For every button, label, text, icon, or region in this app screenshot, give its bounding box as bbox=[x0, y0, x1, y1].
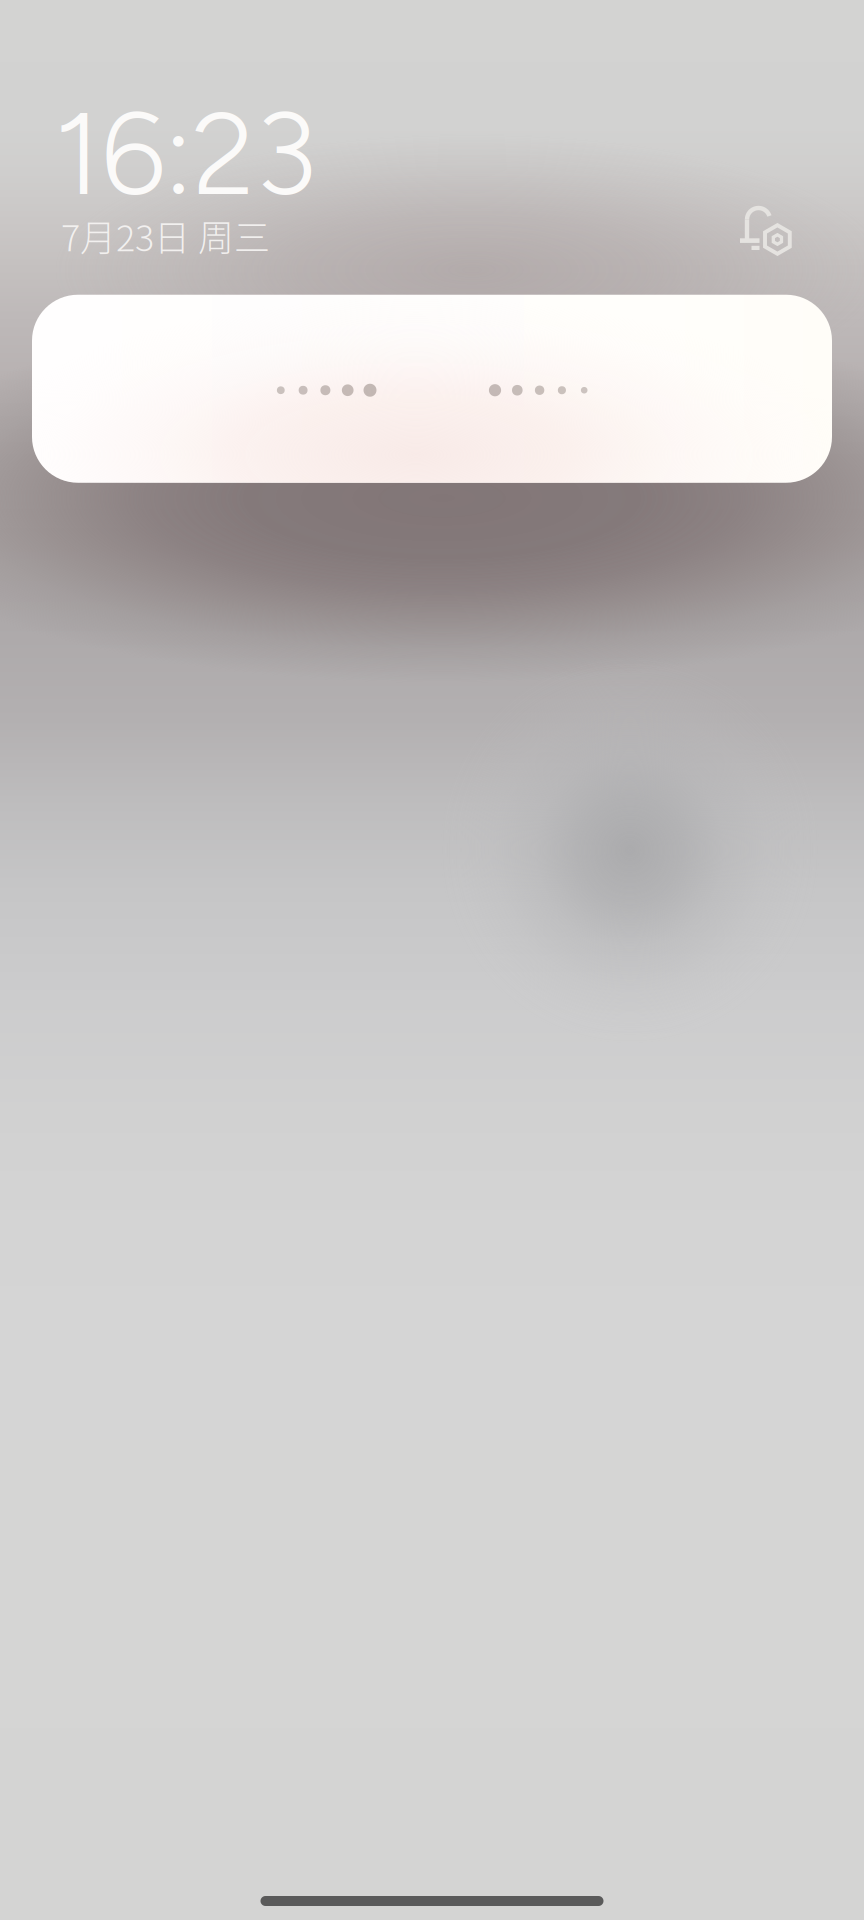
button[interactable] bbox=[32, 295, 832, 483]
staticText: 7月23日 周三 bbox=[61, 210, 270, 262]
button[interactable]: Lock settings bbox=[725, 191, 809, 275]
staticText: 16:23 bbox=[54, 85, 317, 223]
